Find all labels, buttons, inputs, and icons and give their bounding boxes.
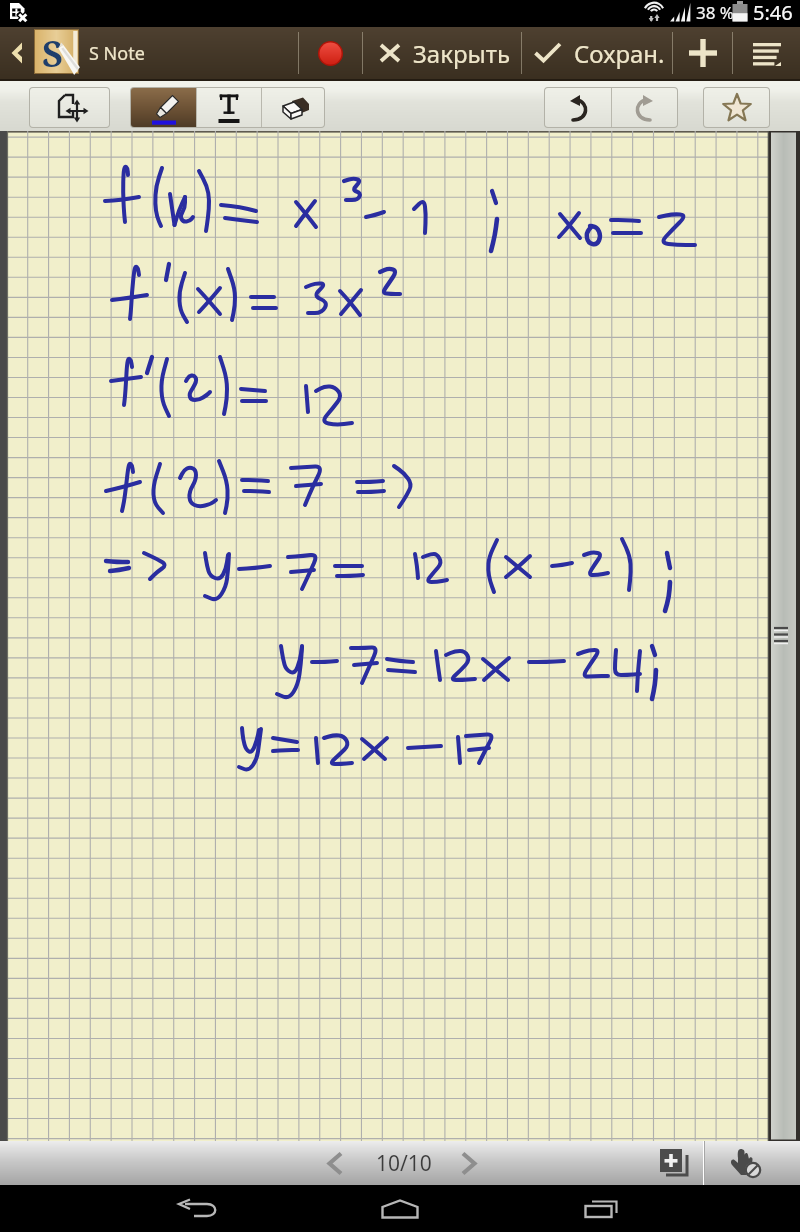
- button[interactable]: Text: [197, 88, 261, 127]
- staticText: 5:46: [753, 0, 793, 26]
- button[interactable]: Add page: [650, 1141, 698, 1185]
- staticText: S: [42, 29, 63, 72]
- button[interactable]: Eraser: [262, 88, 324, 127]
- staticText: Сохран.: [574, 37, 665, 70]
- button[interactable]: Сохран.: [534, 27, 672, 79]
- button[interactable]: Back: [150, 1185, 246, 1232]
- button[interactable]: Add: [674, 27, 732, 79]
- button[interactable]: S Note: [89, 41, 145, 66]
- button[interactable]: Recents: [553, 1185, 649, 1232]
- button[interactable]: Previous page: [316, 1141, 354, 1185]
- button[interactable]: More options: [734, 27, 800, 79]
- button[interactable]: Back: [2, 27, 32, 79]
- button[interactable]: Undo: [545, 88, 611, 127]
- button[interactable]: Home: [352, 1185, 448, 1232]
- button[interactable]: S Note icon: [35, 30, 78, 73]
- staticText: 38 %: [696, 1, 734, 24]
- button[interactable]: Pen: [131, 88, 196, 127]
- button[interactable]: Закрыть: [378, 27, 521, 79]
- button[interactable]: Redo: [612, 88, 677, 127]
- button[interactable]: Tool: [704, 88, 769, 127]
- button[interactable]: Next page: [450, 1141, 488, 1185]
- staticText: Закрыть: [413, 37, 510, 70]
- button[interactable]: Pen only mode: [712, 1141, 780, 1185]
- button[interactable]: Record: [300, 27, 360, 79]
- button[interactable]: Tool: [30, 88, 109, 127]
- staticText: 10/10: [376, 1149, 432, 1178]
